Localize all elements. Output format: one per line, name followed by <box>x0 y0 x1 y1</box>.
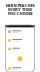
staticText: YOU CHOOSE <box>7 11 32 16</box>
staticText: EARN PEACHES <box>5 3 34 8</box>
staticText: EVERY TIME <box>8 7 32 12</box>
